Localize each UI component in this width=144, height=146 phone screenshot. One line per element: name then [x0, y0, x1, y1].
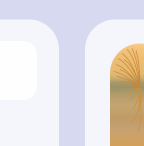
button[interactable] [0, 19, 59, 146]
button[interactable] [85, 19, 144, 146]
